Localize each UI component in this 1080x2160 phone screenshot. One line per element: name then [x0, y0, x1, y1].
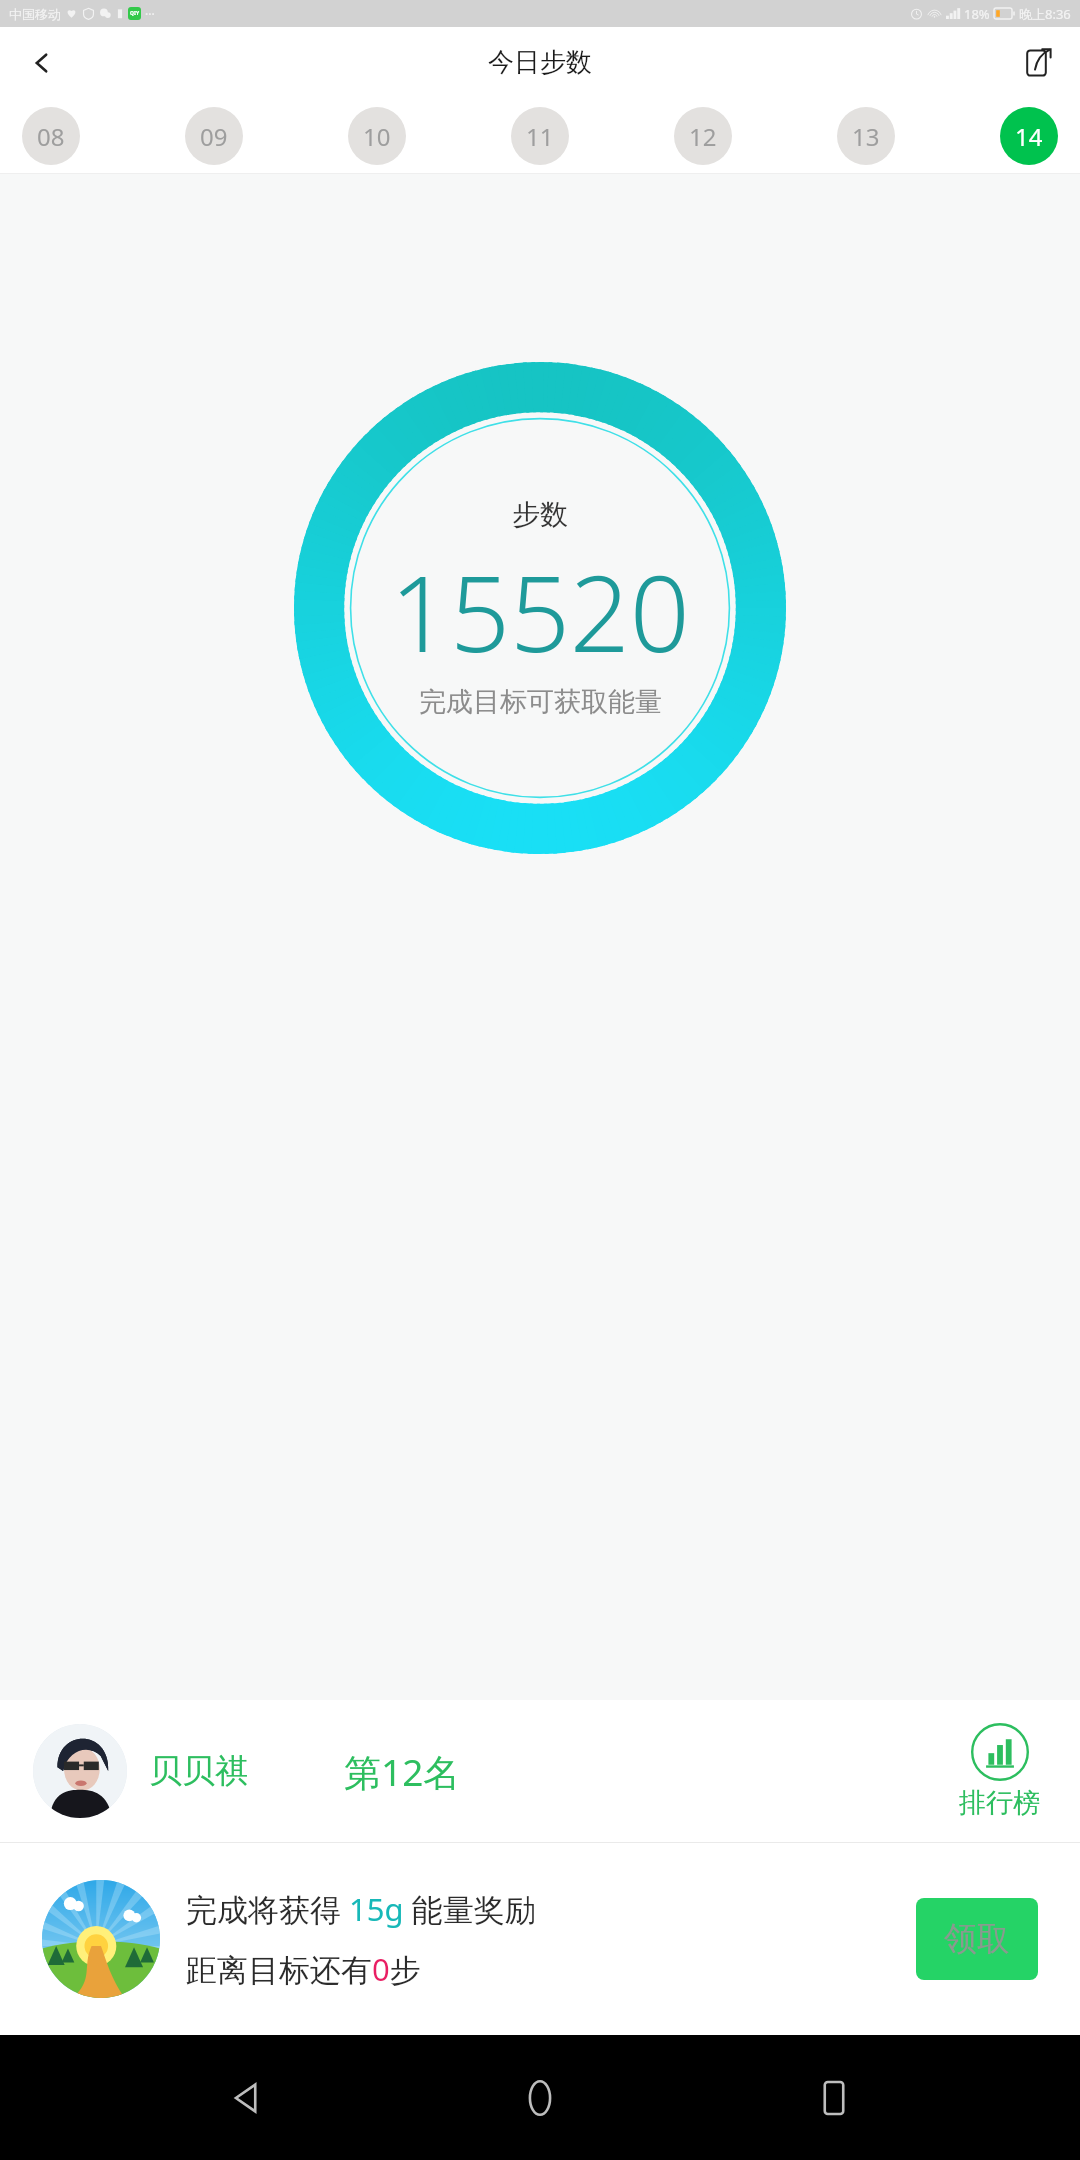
- button[interactable]: Share: [996, 27, 1080, 98]
- staticText: 10: [363, 120, 391, 153]
- staticText: 08: [37, 120, 65, 153]
- staticText: 完成将获得 15g 能量奖励: [186, 1888, 536, 1930]
- button[interactable]: 领取: [916, 1898, 1038, 1980]
- staticText: 中国移动: [9, 6, 61, 22]
- staticText: 15520: [390, 540, 690, 683]
- staticText: 18%: [964, 5, 990, 23]
- staticText: 13: [852, 120, 880, 153]
- staticText: 领取: [944, 1918, 1010, 1960]
- staticText: 第12名: [344, 1746, 461, 1797]
- staticText: 贝贝祺: [149, 1750, 248, 1792]
- staticText: 今日步数: [488, 46, 592, 79]
- staticText: ···: [145, 6, 155, 22]
- staticText: 14: [1015, 120, 1043, 153]
- button[interactable]: 12: [674, 107, 732, 165]
- button[interactable]: 09: [185, 107, 243, 165]
- staticText: 11: [526, 120, 554, 153]
- staticText: 距离目标还有0步: [186, 1948, 421, 1990]
- staticText: 排行榜: [959, 1786, 1040, 1820]
- button[interactable]: 13: [837, 107, 895, 165]
- button[interactable]: 贝贝祺: [0, 1700, 1080, 1842]
- staticText: QIY: [130, 10, 140, 17]
- staticText: 12: [689, 120, 717, 153]
- button[interactable]: Home: [492, 2050, 588, 2146]
- staticText: 完成目标可获取能量: [419, 685, 662, 719]
- button[interactable]: 11: [511, 107, 569, 165]
- button[interactable]: Recents: [786, 2050, 882, 2146]
- button[interactable]: Back: [198, 2050, 294, 2146]
- button[interactable]: 10: [348, 107, 406, 165]
- staticText: 晚上8:36: [1019, 5, 1071, 23]
- button[interactable]: 14: [1000, 107, 1058, 165]
- button[interactable]: Back: [0, 27, 84, 98]
- staticText: 步数: [512, 497, 568, 532]
- staticText: 09: [200, 120, 228, 153]
- button[interactable]: 08: [22, 107, 80, 165]
- button[interactable]: 排行榜: [953, 1717, 1046, 1826]
